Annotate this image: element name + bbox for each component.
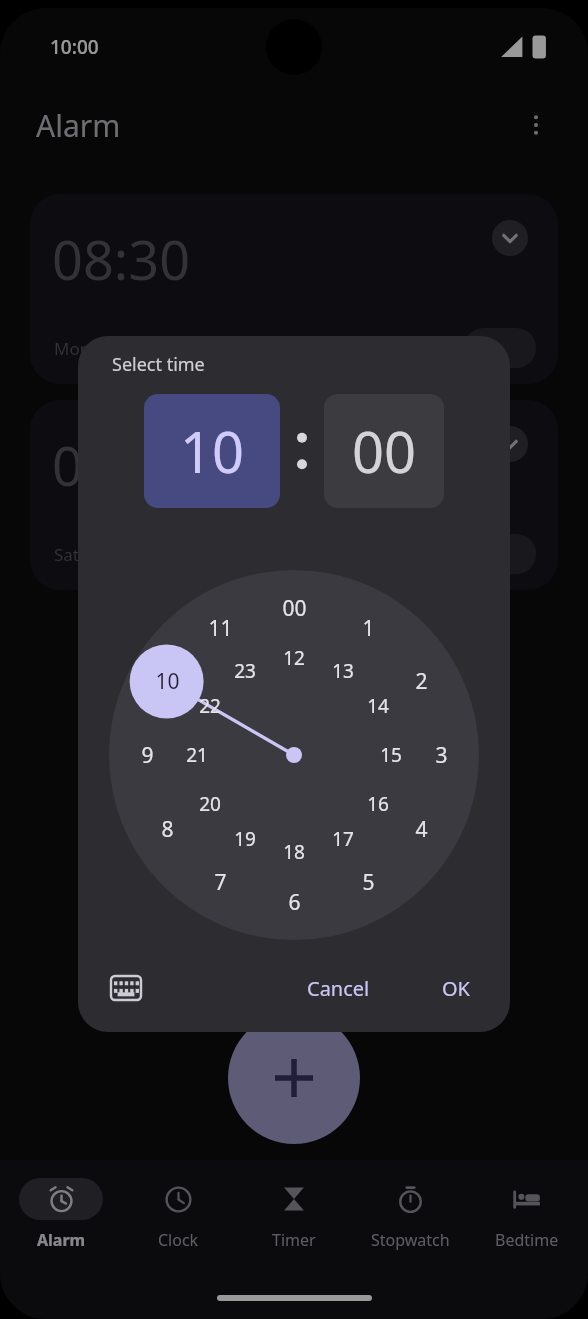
staticText: 21 [186,742,208,768]
staticText: 6 [288,888,301,917]
button[interactable]: OK [442,975,470,1002]
button[interactable]: 3 [419,733,463,777]
button[interactable]: Alarm [6,1178,116,1251]
button[interactable]: 13 [321,649,365,693]
button[interactable]: 9 [125,733,169,777]
staticText: 09:00 [52,428,191,502]
button[interactable] [464,328,536,368]
staticText: Select time [112,352,205,377]
button[interactable] [464,534,536,574]
button[interactable]: Switch to text input [104,966,148,1010]
staticText: 5 [362,868,375,897]
button[interactable]: 22 [188,684,232,728]
staticText: 20 [199,791,221,817]
staticText: 14 [367,693,389,719]
staticText: 11 [208,614,233,643]
staticText: 08:30 [52,222,191,296]
button[interactable]: Add alarm [228,1012,360,1144]
staticText: 18 [283,839,305,865]
button[interactable]: 15 [369,733,413,777]
staticText: 17 [332,826,354,852]
staticText: 2 [415,667,428,696]
button[interactable]: 5 [346,860,390,904]
staticText: Stopwatch [371,1229,450,1251]
button[interactable]: 2 [399,659,443,703]
staticText: Alarm [36,105,121,146]
staticText: 9 [141,741,154,770]
staticText: Alarm [37,1229,86,1251]
staticText: 13 [332,658,354,684]
staticText: Clock [158,1229,199,1251]
button[interactable]: Expand [492,426,528,462]
staticText: Timer [272,1229,316,1251]
staticText: 3 [435,741,448,770]
staticText: 8 [161,815,174,844]
button[interactable]: 10 [144,394,280,508]
staticText: Mon, Tue, Wed [54,337,173,360]
staticText: 10 [155,667,180,696]
button[interactable]: 00 [272,586,316,630]
button[interactable]: Stopwatch [355,1178,465,1251]
staticText: Sat, Sun [54,543,119,566]
staticText: 4 [415,815,428,844]
button[interactable]: 4 [399,807,443,851]
staticText: 1 [362,614,375,643]
button[interactable]: 8 [145,807,189,851]
button[interactable]: 17 [321,817,365,861]
staticText: Bedtime [495,1229,559,1251]
button[interactable]: 18 [272,830,316,874]
staticText: 12 [283,645,305,671]
button[interactable]: 10 [145,659,189,703]
button[interactable]: 1 [346,606,390,650]
button[interactable]: 23 [223,649,267,693]
button[interactable]: 11 [198,606,242,650]
button[interactable]: Timer [239,1178,349,1251]
button[interactable]: Bedtime [472,1178,582,1251]
staticText: Cancel [307,975,370,1002]
staticText: OK [442,975,470,1002]
staticText: 7 [214,868,227,897]
button[interactable]: 20 [188,782,232,826]
button[interactable]: 09:00 [30,400,558,590]
button[interactable]: 6 [272,880,316,924]
staticText: 19 [234,826,256,852]
button[interactable]: Expand [492,220,528,256]
button[interactable]: 08:30 [30,194,558,384]
staticText: 10 [180,413,245,489]
button[interactable]: 19 [223,817,267,861]
button[interactable]: More options [514,103,558,147]
button[interactable]: 7 [198,860,242,904]
button[interactable]: Clock [123,1178,233,1251]
staticText: 10:00 [50,34,99,60]
staticText: 15 [380,742,402,768]
staticText: 16 [367,791,389,817]
button[interactable]: 12 [272,636,316,680]
button[interactable]: 00 [324,394,444,508]
button[interactable]: Cancel [307,975,370,1002]
staticText: 23 [234,658,256,684]
button[interactable]: 14 [356,684,400,728]
staticText: 00 [282,594,307,623]
staticText: 00 [352,413,417,489]
staticText: 22 [199,693,221,719]
button[interactable]: 16 [356,782,400,826]
button[interactable]: 21 [175,733,219,777]
